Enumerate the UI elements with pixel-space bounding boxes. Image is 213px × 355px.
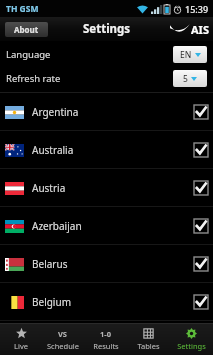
staticText: About <box>14 24 39 35</box>
button[interactable]: Toggle Austria <box>194 181 208 195</box>
staticText: 5 <box>183 73 188 85</box>
button[interactable]: EN <box>173 46 207 63</box>
staticText: 1-0 <box>100 329 111 339</box>
staticText: Austria <box>32 181 66 195</box>
staticText: EN <box>180 49 192 61</box>
button[interactable]: About <box>5 22 48 37</box>
staticText: Language <box>6 48 51 61</box>
button[interactable]: VS <box>42 324 84 355</box>
staticText: Settings <box>83 21 131 37</box>
button[interactable]: Azerbaijan <box>0 207 213 245</box>
button[interactable]: Toggle Azerbaijan <box>194 219 208 233</box>
button[interactable]: Settings <box>170 324 213 355</box>
button[interactable]: Toggle Belarus <box>194 257 208 271</box>
button[interactable]: Toggle Argentina <box>194 105 208 119</box>
button[interactable]: 1-0 <box>84 324 127 355</box>
button[interactable]: Live <box>0 324 42 355</box>
staticText: VS <box>58 329 68 339</box>
staticText: Refresh rate <box>6 72 61 85</box>
button[interactable]: Tables <box>127 324 170 355</box>
staticText: TH GSM <box>6 3 39 15</box>
button[interactable]: Refresh rate <box>0 67 213 89</box>
staticText: Australia <box>32 143 74 157</box>
button[interactable]: Language <box>0 41 213 67</box>
button[interactable]: Belarus <box>0 245 213 283</box>
button[interactable]: Australia <box>0 131 213 169</box>
button[interactable]: Toggle Belgium <box>194 295 208 309</box>
button[interactable]: Argentina <box>0 93 213 131</box>
staticText: Schedule <box>47 341 79 351</box>
staticText: 15:39 <box>185 3 209 15</box>
button[interactable]: Austria <box>0 169 213 207</box>
staticText: Settings <box>177 341 206 351</box>
staticText: Results <box>93 341 119 351</box>
button[interactable]: Belgium <box>0 283 213 321</box>
staticText: Live <box>14 341 28 351</box>
staticText: Argentina <box>32 105 79 119</box>
staticText: Azerbaijan <box>32 219 82 233</box>
staticText: AIS <box>191 22 209 37</box>
staticText: Tables <box>137 341 160 351</box>
button[interactable]: Toggle Australia <box>194 143 208 157</box>
button[interactable]: 5 <box>173 70 207 87</box>
staticText: Belgium <box>32 295 71 309</box>
staticText: Belarus <box>32 257 68 271</box>
